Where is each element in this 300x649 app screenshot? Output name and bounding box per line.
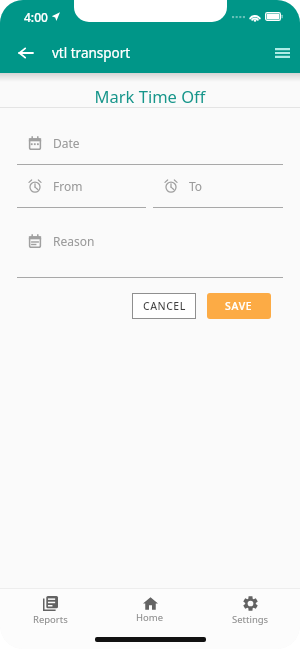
staticText: SAVE — [225, 299, 253, 313]
button[interactable]: SAVE — [207, 293, 271, 319]
button[interactable]: CANCEL — [132, 293, 196, 319]
staticText: vtl transport — [52, 44, 131, 62]
button[interactable]: From — [17, 178, 146, 208]
staticText: CANCEL — [143, 299, 186, 313]
staticText: Reports — [33, 613, 68, 626]
staticText: Reason — [53, 233, 95, 249]
button[interactable]: Back — [6, 33, 46, 73]
staticText: To — [189, 178, 203, 194]
staticText: Date — [53, 135, 80, 151]
button[interactable]: Reason — [17, 233, 283, 278]
staticText: Home — [136, 611, 164, 624]
button[interactable]: Home — [100, 596, 200, 626]
button[interactable]: Menu — [264, 33, 300, 73]
button[interactable]: Date — [17, 135, 283, 165]
staticText: Mark Time Off — [0, 85, 300, 107]
staticText: Settings — [232, 613, 269, 626]
staticText: From — [53, 178, 83, 194]
button[interactable]: Reports — [0, 596, 100, 626]
button[interactable]: To — [153, 178, 283, 208]
staticText: 4:00 — [24, 9, 48, 25]
button[interactable]: Settings — [200, 596, 300, 626]
